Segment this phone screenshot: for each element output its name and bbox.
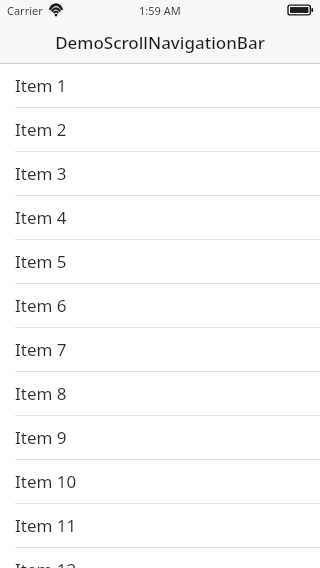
staticText: Item 2 xyxy=(15,118,67,141)
staticText: Item 4 xyxy=(15,206,67,229)
staticText: Item 10 xyxy=(15,470,77,493)
button[interactable]: Item 12 xyxy=(0,548,320,568)
staticText: Item 6 xyxy=(15,294,67,317)
staticText: Item 5 xyxy=(15,250,67,273)
other: Battery full xyxy=(288,4,314,16)
staticText: Item 7 xyxy=(15,338,67,361)
button[interactable]: Item 5 xyxy=(0,240,320,284)
button[interactable]: Item 4 xyxy=(0,196,320,240)
button[interactable]: Item 9 xyxy=(0,416,320,460)
other: Wi-Fi signal xyxy=(49,5,63,16)
staticText: Item 8 xyxy=(15,382,67,405)
button[interactable]: Item 1 xyxy=(0,64,320,108)
button[interactable]: Item 3 xyxy=(0,152,320,196)
staticText: Item 12 xyxy=(15,558,77,568)
button[interactable]: Item 7 xyxy=(0,328,320,372)
button[interactable]: Item 11 xyxy=(0,504,320,548)
button[interactable]: Item 2 xyxy=(0,108,320,152)
staticText: Item 9 xyxy=(15,426,67,449)
staticText: Carrier xyxy=(7,3,43,18)
staticText: 1:59 AM xyxy=(139,3,181,18)
button[interactable]: Item 10 xyxy=(0,460,320,504)
staticText: Item 11 xyxy=(15,514,77,537)
button[interactable]: Item 8 xyxy=(0,372,320,416)
staticText: DemoScrollNavigationBar xyxy=(55,31,265,54)
staticText: Item 3 xyxy=(15,162,67,185)
button[interactable]: Item 6 xyxy=(0,284,320,328)
staticText: Item 1 xyxy=(15,74,67,97)
